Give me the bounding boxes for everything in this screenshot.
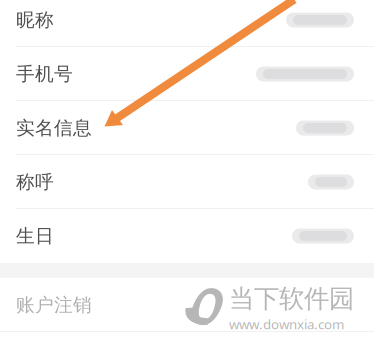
button[interactable]: 生日 — [0, 209, 374, 263]
staticText: 账户注销 — [16, 293, 92, 316]
button[interactable]: 账户注销 — [0, 278, 374, 332]
staticText: 生日 — [16, 224, 54, 247]
staticText: 当下软件园 — [229, 283, 354, 314]
button[interactable]: 昵称 — [0, 0, 374, 47]
staticText: 昵称 — [16, 8, 54, 31]
staticText: 实名信息 — [16, 116, 92, 139]
staticText: 称呼 — [16, 170, 54, 193]
button[interactable]: 手机号 — [0, 47, 374, 101]
button[interactable]: 称呼 — [0, 155, 374, 209]
button[interactable]: 实名信息 — [0, 101, 374, 155]
staticText: 手机号 — [16, 62, 73, 85]
staticText: www.downxia.com — [229, 315, 344, 333]
